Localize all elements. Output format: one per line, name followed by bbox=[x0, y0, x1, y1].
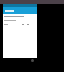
button[interactable] bbox=[3, 7, 37, 14]
button[interactable]: Home bbox=[31, 59, 34, 62]
